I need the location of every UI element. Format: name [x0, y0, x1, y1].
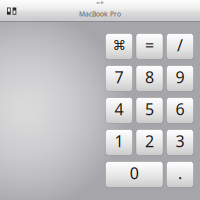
staticText: MacBook Pro	[79, 9, 121, 18]
staticText: 1	[114, 130, 123, 152]
staticText: 7	[114, 66, 123, 88]
staticText: 8	[145, 66, 154, 88]
button[interactable]: .	[166, 161, 193, 187]
staticText: =	[145, 34, 154, 56]
staticText: 0	[130, 162, 139, 184]
button[interactable]: 5	[136, 97, 163, 123]
staticText: 2	[145, 130, 154, 152]
button[interactable]: 2	[136, 129, 163, 155]
staticText: 4	[114, 98, 123, 120]
staticText: 3	[175, 130, 184, 152]
button[interactable]: ⌘	[105, 33, 132, 59]
staticText: 9	[175, 66, 184, 88]
button[interactable]: /	[166, 33, 193, 59]
button[interactable]: 3	[166, 129, 193, 155]
button[interactable]: 1	[105, 129, 132, 155]
staticText: ⌘	[112, 38, 125, 53]
button[interactable]: 8	[136, 65, 163, 91]
button[interactable]: 0	[105, 161, 163, 187]
button[interactable]: 7	[105, 65, 132, 91]
button[interactable]: =	[136, 33, 163, 59]
staticText: .	[178, 162, 182, 184]
button[interactable]: 6	[166, 97, 193, 123]
button[interactable]: Devices	[0, 0, 16, 15]
staticText: 6	[175, 98, 184, 120]
staticText: 5	[145, 98, 154, 120]
button[interactable]: 9	[166, 65, 193, 91]
button[interactable]: 4	[105, 97, 132, 123]
staticText: /	[177, 34, 183, 56]
